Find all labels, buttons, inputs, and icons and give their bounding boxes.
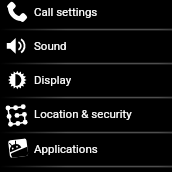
button[interactable]: Location & security [0,97,172,132]
staticText: Location & security [34,107,132,120]
staticText: Sound [34,39,67,52]
staticText: Display [34,73,72,86]
button[interactable]: Sound [0,29,172,63]
button[interactable]: Applications [0,132,172,166]
staticText: Applications [34,142,98,155]
button[interactable]: Call settings [0,0,172,30]
staticText: Call settings [34,5,98,18]
button[interactable]: Display [0,63,172,97]
